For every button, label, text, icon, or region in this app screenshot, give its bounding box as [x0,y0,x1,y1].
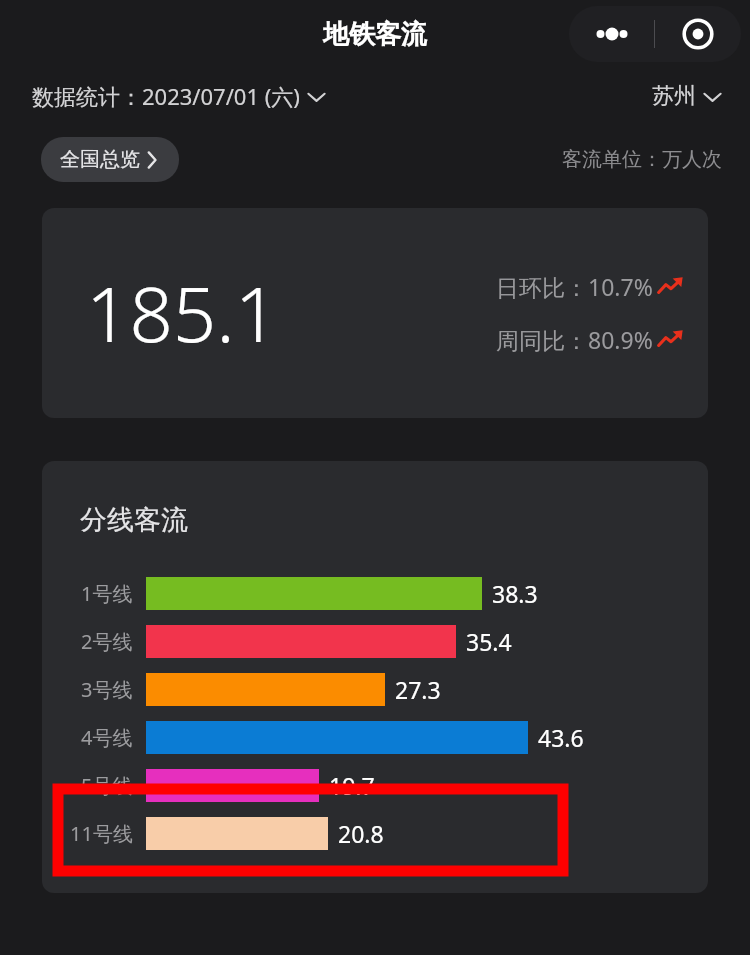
button[interactable]: 1号线 [42,569,708,617]
button[interactable]: 4号线 [42,713,708,761]
staticText: 11号线 [70,820,133,847]
staticText: 3号线 [81,676,133,703]
staticText: 2号线 [81,628,133,655]
button[interactable]: 苏州 [652,82,726,110]
staticText: 数据统计：2023/07/01 (六) [32,81,300,111]
staticText: 日环比：10.7% [496,271,653,302]
button[interactable]: 全国总览 [41,137,179,182]
staticText: 43.6 [538,722,584,753]
staticText: 1号线 [81,580,133,607]
staticText: 全国总览 [60,147,140,172]
staticText: 分线客流 [80,503,188,537]
button[interactable]: 数据统计：2023/07/01 (六) [32,81,330,111]
staticText: 苏州 [652,82,696,110]
button[interactable]: More options [569,6,654,62]
staticText: 周同比：80.9% [496,324,653,355]
staticText: 19.7 [329,770,375,801]
staticText: 地铁客流 [323,18,427,51]
staticText: 185.1 [86,261,279,365]
button[interactable]: 2号线 [42,617,708,665]
button[interactable]: 11号线 [42,809,708,857]
button[interactable]: 185.1 [42,208,708,418]
staticText: 35.4 [466,626,512,657]
staticText: 38.3 [492,578,538,609]
staticText: 20.8 [338,818,384,849]
staticText: 27.3 [395,674,441,705]
button[interactable]: 3号线 [42,665,708,713]
button[interactable]: 5号线 [42,761,708,809]
staticText: 5号线 [81,772,133,799]
button[interactable]: Close mini program [655,6,741,62]
staticText: 客流单位：万人次 [562,147,722,172]
staticText: 4号线 [81,724,133,751]
